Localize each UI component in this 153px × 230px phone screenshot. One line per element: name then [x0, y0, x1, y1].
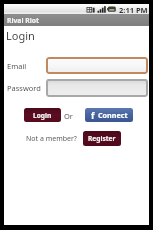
staticText: Register: [88, 134, 116, 143]
staticText: f: [91, 109, 95, 121]
button[interactable]: Login: [24, 108, 61, 122]
staticText: Login: [33, 111, 52, 120]
staticText: Email: [7, 61, 27, 71]
button[interactable]: Register: [83, 131, 121, 146]
staticText: 2:11 PM: [119, 5, 148, 15]
button[interactable]: [46, 79, 148, 97]
staticText: Login: [6, 28, 35, 43]
staticText: Rival Riot: [7, 16, 39, 25]
button[interactable]: f: [85, 108, 133, 122]
staticText: Connect: [98, 110, 128, 120]
staticText: Or: [64, 111, 73, 121]
staticText: Password: [7, 83, 41, 93]
button[interactable]: [46, 57, 148, 74]
staticText: Not a member?: [26, 134, 77, 144]
